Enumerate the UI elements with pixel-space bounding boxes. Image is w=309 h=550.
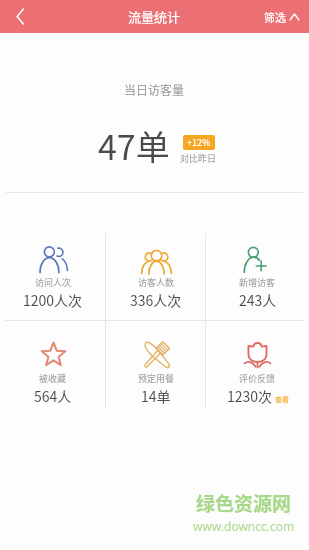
button[interactable]: 访问人次: [0, 233, 106, 321]
staticText: 预定用餐: [138, 372, 175, 385]
button[interactable]: Back: [0, 0, 40, 33]
staticText: www.downcc.com: [193, 518, 295, 534]
staticText: 评价反馈: [239, 372, 276, 385]
staticText: 被收藏: [39, 372, 67, 385]
button[interactable]: 被收藏: [0, 321, 106, 409]
staticText: 14单: [141, 386, 171, 406]
staticText: 当日访客量: [124, 81, 185, 98]
staticText: 47单: [98, 121, 170, 170]
staticText: 1230次: [227, 386, 273, 406]
button[interactable]: 新增访客: [206, 233, 309, 321]
button[interactable]: 评价反馈: [206, 321, 309, 409]
staticText: +12%: [187, 136, 211, 149]
staticText: 对比昨日: [180, 152, 217, 165]
staticText: 绿色资源网: [196, 489, 292, 517]
staticText: 新增访客: [239, 276, 276, 289]
button[interactable]: 访客人数: [106, 233, 206, 321]
button[interactable]: 筛选: [254, 0, 309, 33]
staticText: 243人: [239, 290, 277, 310]
staticText: 访问人次: [35, 276, 72, 289]
staticText: 访客人数: [138, 276, 175, 289]
staticText: 4:20 AM: [136, 2, 174, 16]
staticText: 流量统计: [128, 7, 181, 26]
staticText: 336人次: [130, 290, 182, 310]
staticText: 筛选: [264, 9, 286, 25]
staticText: 1200人次: [23, 290, 83, 310]
button[interactable]: 预定用餐: [106, 321, 206, 409]
staticText: 564人: [34, 386, 72, 406]
staticText: 查看: [275, 394, 289, 404]
